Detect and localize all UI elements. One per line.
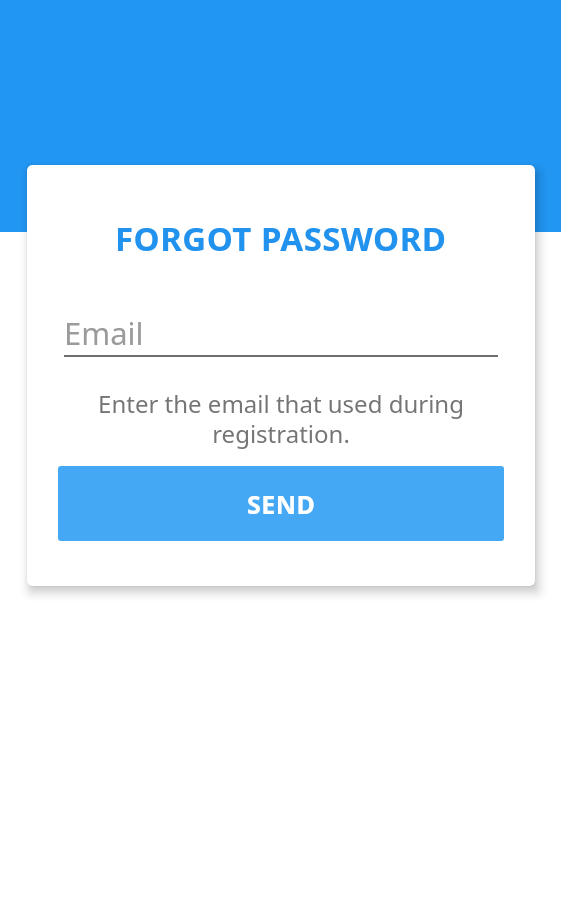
staticText: SEND [247, 487, 316, 521]
button[interactable]: Email [64, 312, 498, 352]
staticText: Enter the email that used during registr… [98, 387, 464, 450]
button[interactable]: SEND [58, 466, 504, 541]
staticText: FORGOT PASSWORD [115, 216, 447, 256]
staticText: Email [64, 312, 144, 352]
